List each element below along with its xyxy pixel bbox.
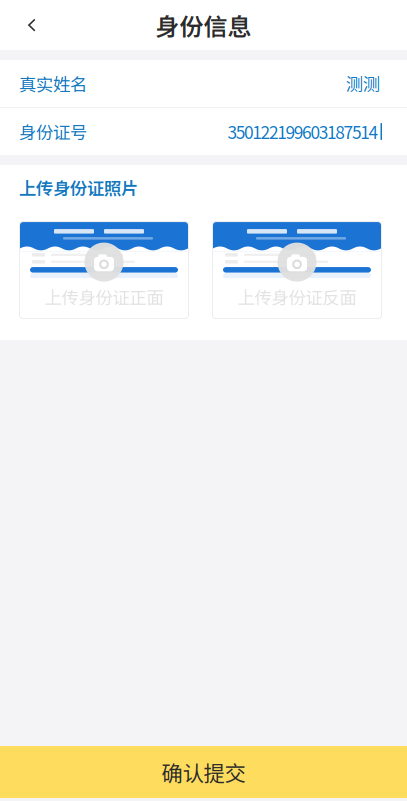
staticText: 身份证号: [19, 119, 87, 144]
button[interactable]: 上传身份证正面: [19, 221, 189, 319]
button[interactable]: 上传身份证反面: [212, 221, 382, 319]
staticText: 确认提交: [161, 757, 245, 787]
staticText: 身份信息: [155, 8, 251, 42]
staticText: 上传身份证照片: [19, 175, 138, 200]
staticText: 测测: [346, 71, 380, 96]
staticText: 上传身份证正面: [44, 284, 163, 309]
staticText: 上传身份证反面: [237, 284, 356, 309]
staticText: 真实姓名: [19, 71, 87, 96]
button[interactable]: 身份证号: [0, 108, 407, 155]
staticText: 350122199603187514: [227, 119, 378, 144]
button[interactable]: 确认提交: [0, 746, 407, 798]
button[interactable]: Back: [0, 3, 44, 47]
button[interactable]: 真实姓名: [0, 60, 407, 107]
